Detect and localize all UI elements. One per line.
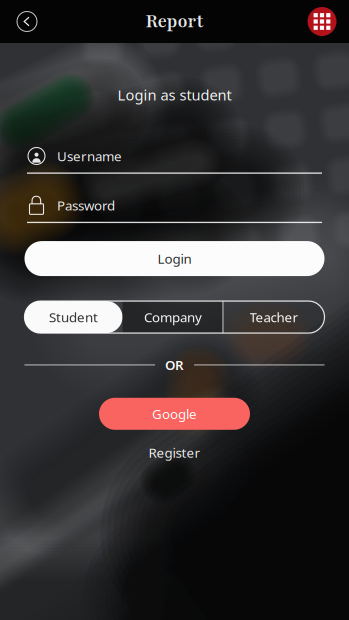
staticText: Password [57, 196, 115, 214]
staticText: Login [157, 250, 191, 267]
button[interactable]: Teacher [223, 301, 324, 333]
button[interactable]: Apps [300, 0, 344, 43]
button[interactable]: Google [99, 398, 250, 430]
staticText: Login as student [117, 85, 231, 104]
staticText: Teacher [249, 308, 298, 326]
button[interactable]: Company [122, 301, 223, 333]
button[interactable]: Login [24, 241, 324, 276]
staticText: OR [165, 356, 184, 374]
staticText: Google [152, 405, 197, 423]
staticText: Register [148, 444, 200, 461]
button[interactable]: Register [134, 440, 214, 465]
button[interactable]: Back [5, 0, 49, 43]
staticText: Report [145, 9, 203, 33]
staticText: Student [49, 308, 98, 326]
staticText: Company [144, 308, 202, 326]
button[interactable]: Student [24, 301, 122, 333]
staticText: Username [57, 147, 122, 165]
